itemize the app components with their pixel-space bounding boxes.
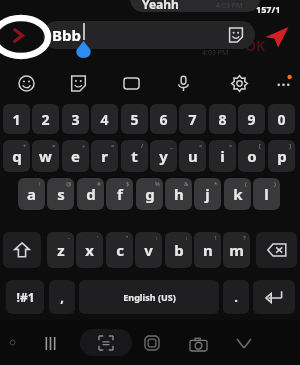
button[interactable]: y — [150, 140, 177, 172]
button[interactable]: q — [3, 140, 30, 172]
staticText: = — [111, 142, 115, 150]
button[interactable]: e — [62, 140, 89, 172]
button[interactable]: Stickers — [228, 27, 244, 43]
button[interactable]: w — [32, 140, 59, 172]
button[interactable]: b — [165, 232, 192, 268]
staticText: Bbb — [52, 25, 81, 45]
button[interactable]: GIF — [118, 70, 144, 96]
button[interactable]: j — [194, 178, 221, 210]
staticText: ! — [39, 180, 41, 188]
button[interactable]: s — [47, 178, 74, 210]
staticText: + — [23, 142, 27, 150]
button[interactable]: g — [136, 178, 163, 210]
button[interactable]: h — [165, 178, 192, 210]
staticText: & — [184, 180, 189, 188]
button[interactable]: k — [224, 178, 251, 210]
button[interactable]: Home — [140, 331, 164, 355]
staticText: 1 — [12, 110, 21, 129]
button[interactable]: Backspace — [256, 232, 297, 268]
button[interactable]: 8 — [209, 104, 236, 134]
staticText: . — [234, 288, 238, 306]
staticText: [ — [259, 142, 261, 150]
button[interactable]: 2 — [32, 104, 59, 134]
button[interactable]: x — [76, 232, 103, 268]
button[interactable]: 7 — [179, 104, 206, 134]
staticText: z — [57, 240, 65, 260]
button[interactable]: 0 — [268, 104, 295, 134]
staticText: 9 — [247, 110, 256, 129]
staticText: - — [68, 234, 70, 242]
button[interactable]: r — [91, 140, 118, 172]
button[interactable]: Yeahh — [130, 0, 260, 12]
button[interactable]: c — [106, 232, 133, 268]
button[interactable]: !#1 — [6, 280, 44, 314]
button[interactable]: Enter — [253, 280, 295, 314]
button[interactable]: Bbb — [43, 21, 255, 49]
staticText: k — [233, 184, 243, 204]
staticText: % — [155, 180, 160, 188]
button[interactable]: p — [268, 140, 295, 172]
staticText: !#1 — [16, 289, 35, 305]
button[interactable]: 6 — [150, 104, 177, 134]
button[interactable]: Recents — [38, 331, 62, 355]
staticText: g — [145, 184, 155, 204]
staticText: p — [277, 146, 287, 166]
button[interactable]: o — [238, 140, 265, 172]
staticText: w — [39, 146, 52, 166]
staticText: 4:03 PM — [216, 1, 243, 11]
staticText: u — [188, 146, 198, 166]
button[interactable]: 9 — [238, 104, 265, 134]
button[interactable]: 1 — [3, 104, 30, 134]
staticText: Yeahh — [142, 0, 179, 12]
button[interactable]: , — [49, 280, 75, 314]
staticText: v — [144, 240, 153, 260]
staticText: j — [205, 184, 210, 204]
button[interactable]: u — [179, 140, 206, 172]
button[interactable]: Camera — [185, 331, 211, 357]
staticText: < — [199, 142, 203, 150]
staticText: x — [85, 240, 94, 260]
staticText: ÷ — [82, 142, 86, 150]
staticText: * — [214, 180, 218, 188]
button[interactable]: . — [223, 280, 249, 314]
staticText: @ — [66, 180, 72, 188]
button[interactable]: i — [209, 140, 236, 172]
button[interactable]: Emoji — [13, 70, 39, 96]
staticText: OK — [245, 36, 266, 55]
button[interactable]: v — [135, 232, 162, 268]
staticText: # — [97, 180, 101, 188]
staticText: r — [101, 146, 108, 166]
button[interactable]: l — [253, 178, 280, 210]
button[interactable]: Voice input — [170, 70, 196, 96]
button[interactable]: 4 — [91, 104, 118, 134]
button[interactable]: 5 — [121, 104, 148, 134]
button[interactable]: Hide keyboard — [232, 331, 256, 355]
staticText: 2 — [41, 110, 50, 129]
staticText: n — [203, 240, 213, 260]
button[interactable]: t — [121, 140, 148, 172]
button[interactable]: a — [18, 178, 45, 210]
button[interactable]: More options — [270, 70, 296, 96]
staticText: " — [126, 234, 129, 242]
staticText: f — [117, 184, 123, 204]
button[interactable]: z — [47, 232, 74, 268]
staticText: $ — [126, 180, 130, 188]
button[interactable]: Settings — [226, 70, 252, 96]
button[interactable]: 3 — [62, 104, 89, 134]
staticText: ] — [289, 142, 291, 150]
button[interactable]: English (US) — [79, 280, 219, 314]
button[interactable]: n — [194, 232, 221, 268]
staticText: l — [264, 184, 269, 204]
button[interactable]: Shift — [3, 232, 41, 268]
button[interactable]: f — [106, 178, 133, 210]
staticText: _ — [170, 142, 173, 150]
button[interactable]: Scan — [80, 329, 132, 356]
staticText: h — [174, 184, 184, 204]
staticText: e — [71, 146, 80, 166]
button[interactable]: m — [223, 232, 250, 268]
button[interactable]: Stickers — [65, 70, 91, 96]
staticText: ' — [97, 234, 99, 242]
staticText: , — [60, 288, 64, 306]
staticText: × — [52, 142, 56, 150]
button[interactable]: d — [77, 178, 104, 210]
